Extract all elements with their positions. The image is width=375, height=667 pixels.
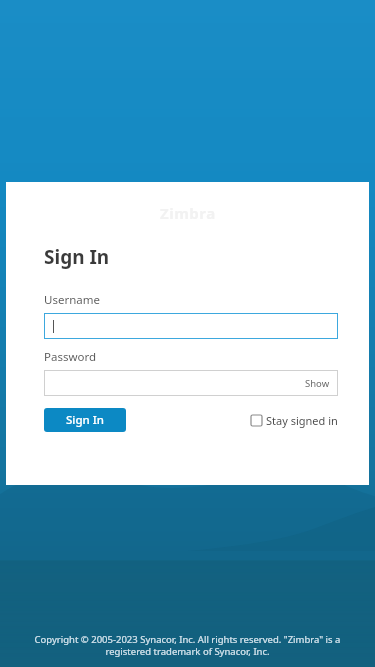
button[interactable]: Sign In	[44, 408, 126, 432]
staticText: Username	[44, 292, 100, 308]
button[interactable]: Show	[44, 370, 338, 396]
staticText: Show	[305, 377, 330, 390]
staticText: Sign In	[66, 412, 105, 428]
button[interactable]: Stay signed in	[251, 413, 338, 428]
staticText: Copyright © 2005-2023 Synacor, Inc. All …	[12, 633, 363, 658]
staticText: Sign In	[44, 244, 110, 270]
staticText: Password	[44, 349, 97, 365]
staticText: Stay signed in	[266, 413, 338, 428]
button[interactable]	[44, 313, 338, 339]
button[interactable]: Show	[297, 373, 338, 394]
staticText: Zimbra	[160, 203, 216, 223]
